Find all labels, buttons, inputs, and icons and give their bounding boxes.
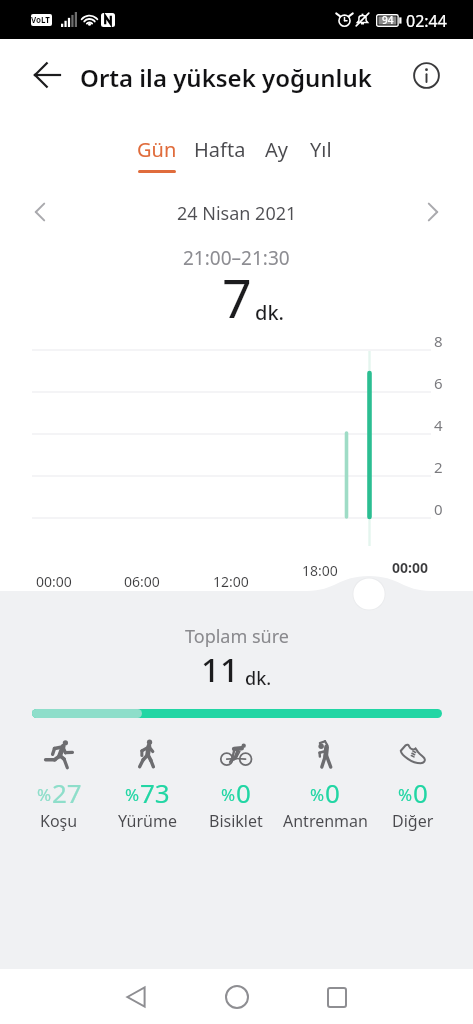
button[interactable]: Recents	[315, 975, 359, 1019]
staticText: 7	[222, 262, 252, 333]
staticText: 0	[434, 499, 443, 519]
staticText: Yürüme	[118, 810, 177, 832]
staticText: %	[37, 783, 52, 806]
button[interactable]: %	[369, 736, 457, 836]
button[interactable]: Hafta	[180, 136, 260, 178]
staticText: 06:00	[124, 572, 160, 591]
staticText: 0	[236, 775, 251, 810]
button[interactable]: %	[281, 736, 369, 836]
staticText: Gün	[137, 136, 177, 163]
staticText: VoLTE	[31, 14, 52, 26]
staticText: Toplam süre	[185, 624, 289, 649]
staticText: 2	[434, 457, 443, 477]
button[interactable]: Back	[25, 53, 69, 97]
staticText: Diğer	[392, 810, 434, 832]
button[interactable]: Info	[405, 54, 448, 97]
button[interactable]: Previous day	[22, 194, 58, 230]
staticText: 24 Nisan 2021	[177, 201, 297, 226]
staticText: 18:00	[302, 561, 338, 580]
button[interactable]: Next day	[415, 194, 451, 230]
button[interactable]: %	[15, 736, 103, 836]
staticText: 8	[434, 331, 443, 351]
staticText: Ay	[265, 136, 288, 163]
staticText: 94	[382, 13, 394, 27]
staticText: Orta ila yüksek yoğunluk	[80, 61, 372, 94]
staticText: %	[125, 783, 140, 806]
staticText: %	[310, 783, 325, 806]
staticText: 4	[434, 415, 443, 435]
button[interactable]: Yıl	[292, 136, 350, 178]
staticText: 00:00	[392, 558, 428, 577]
staticText: %	[398, 783, 413, 806]
button[interactable]: Back	[114, 975, 158, 1019]
staticText: Koşu	[40, 810, 78, 832]
staticText: Yıl	[310, 136, 332, 163]
button[interactable]: Home	[215, 975, 259, 1019]
button[interactable]: %	[192, 736, 280, 836]
staticText: 27	[52, 775, 82, 810]
staticText: 0	[413, 775, 428, 810]
staticText: dk.	[255, 299, 285, 326]
button[interactable]: Gün	[124, 136, 190, 178]
staticText: 0	[325, 775, 340, 810]
staticText: 6	[434, 373, 443, 393]
staticText: Antrenman	[283, 810, 368, 832]
staticText: 12:00	[213, 572, 249, 591]
staticText: dk.	[245, 666, 272, 691]
staticText: 11	[201, 647, 239, 692]
staticText: 73	[140, 775, 170, 810]
staticText: 00:00	[36, 572, 72, 591]
staticText: Hafta	[194, 136, 246, 163]
staticText: 21:00–21:30	[183, 245, 290, 271]
staticText: Bisiklet	[209, 810, 263, 832]
button[interactable]: %	[103, 736, 191, 836]
staticText: %	[221, 783, 236, 806]
button[interactable]: Ay	[246, 136, 306, 178]
staticText: 02:44	[406, 10, 447, 32]
